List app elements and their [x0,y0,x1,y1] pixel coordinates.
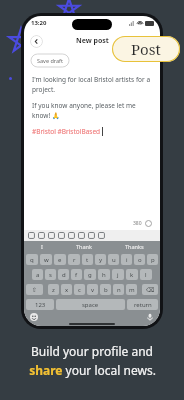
staticText: c [78,286,81,294]
staticText: z [52,286,55,294]
button[interactable]: Save draft [31,54,69,67]
staticText: p [151,256,155,264]
staticText: d [62,271,66,279]
button[interactable]: i [121,254,132,265]
staticText: w [44,256,49,264]
button[interactable]: l [140,269,152,280]
button[interactable]: g [84,269,96,280]
staticText: #Bristol #BristolBased [32,127,101,136]
button[interactable]: Thanks [125,243,144,250]
button[interactable]: space [56,299,125,310]
button[interactable]: Editor tool [58,232,65,239]
button[interactable]: Dictate [146,313,154,321]
staticText: Thank [76,243,92,250]
staticText: r [73,256,76,264]
button[interactable]: f [71,269,82,280]
staticText: b [104,286,108,294]
button[interactable]: o [134,254,145,265]
button[interactable]: Editor tool [78,232,85,239]
button[interactable]: q [26,254,38,265]
staticText: m [129,286,135,294]
staticText: share your local news. [29,362,156,378]
button[interactable]: t [82,254,93,265]
button[interactable]: y [95,254,106,265]
staticText: q [30,256,34,264]
staticText: I'm looking for local Bristol artists fo… [32,75,152,94]
button[interactable]: Thank [76,243,92,250]
button[interactable]: Editor tool [28,232,35,239]
button[interactable]: k [126,269,138,280]
button[interactable]: Editor tool [38,232,45,239]
staticText: j [117,271,119,279]
button[interactable]: m [126,284,137,295]
staticText: s [49,271,52,279]
button[interactable]: Back [30,35,43,48]
staticText: return [134,301,152,309]
staticText: space [82,301,99,309]
button[interactable]: x [61,284,72,295]
button[interactable]: Editor tool [48,232,55,239]
button[interactable]: ⌫ [142,284,158,295]
button[interactable]: c [74,284,85,295]
button[interactable]: p [147,254,158,265]
staticText: t [86,256,89,264]
staticText: Post [131,39,161,59]
button[interactable]: u [108,254,119,265]
staticText: v [91,286,95,294]
staticText: 13:20 [31,19,47,27]
button[interactable]: Editor tool [88,232,95,239]
button[interactable]: Emoji [30,313,38,321]
staticText: ⇧ [32,286,38,293]
staticText: l [145,271,147,279]
staticText: h [102,271,106,279]
button[interactable]: r [68,254,80,265]
button[interactable]: v [87,284,98,295]
button[interactable]: z [48,284,59,295]
staticText: i [126,256,128,264]
staticText: y [99,256,103,264]
button[interactable]: h [98,269,110,280]
staticText: Save draft [37,57,63,64]
staticText: a [36,271,40,279]
button[interactable]: j [112,269,124,280]
button[interactable]: Post [112,36,180,62]
button[interactable]: d [58,269,69,280]
button[interactable]: a [32,269,43,280]
staticText: 380 [133,220,142,227]
staticText: e [58,256,62,264]
button[interactable]: Editor tool [68,232,75,239]
staticText: n [117,286,121,294]
staticText: I [41,243,43,250]
staticText: ⌫ [146,286,155,293]
staticText: Thanks [125,243,144,250]
staticText: If you know anyone, please let me know! … [32,101,152,120]
staticText: o [138,256,142,264]
button[interactable]: s [45,269,56,280]
button[interactable]: ⇧ [26,284,43,295]
staticText: g [88,271,92,279]
button[interactable]: n [113,284,124,295]
staticText: f [75,271,78,279]
staticText: Build your profile and [31,343,153,359]
staticText: 123 [35,301,46,309]
button[interactable]: 123 [26,299,54,310]
staticText: x [65,286,69,294]
button[interactable]: I [41,243,43,250]
button[interactable]: w [40,254,52,265]
staticText: New post [76,36,109,46]
button[interactable]: return [127,299,158,310]
staticText: k [130,271,134,279]
button[interactable]: e [54,254,66,265]
button[interactable]: Editor tool [98,232,105,239]
button[interactable]: b [100,284,111,295]
staticText: u [112,256,116,264]
